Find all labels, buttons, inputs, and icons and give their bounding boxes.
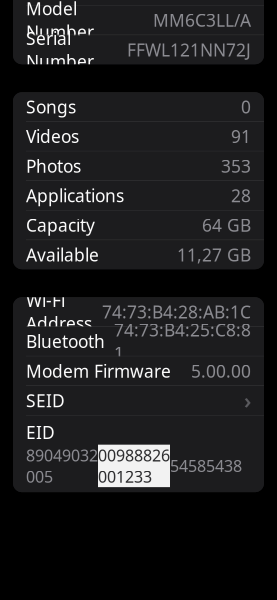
button[interactable]: EID — [13, 416, 264, 492]
button[interactable]: Videos — [13, 122, 264, 151]
staticText: Model Name — [26, 0, 131, 2]
button[interactable]: Available — [13, 240, 264, 269]
button[interactable]: Serial Number — [13, 35, 264, 64]
staticText: Model Number — [26, 0, 94, 43]
staticText: Capacity — [26, 214, 95, 237]
button[interactable]: Modem Firmware — [13, 356, 264, 385]
staticText: 5.00.00 — [191, 359, 251, 382]
button[interactable]: Capacity — [13, 211, 264, 240]
staticText: Modem Firmware — [26, 359, 171, 382]
button[interactable]: Photos — [13, 151, 264, 180]
staticText: 89049032005 — [26, 445, 98, 487]
button[interactable]: Bluetooth — [13, 327, 264, 356]
staticText: 74:73:B4:25:C8:81 — [114, 318, 251, 364]
staticText: FFWL121NN72J — [127, 38, 251, 61]
staticText: Bluetooth — [26, 330, 105, 353]
staticText: 74:73:B4:28:AB:1C — [102, 300, 251, 323]
button[interactable]: Applications — [13, 181, 264, 210]
button[interactable]: SEID — [13, 386, 264, 415]
button[interactable]: Model Name — [13, 0, 264, 5]
staticText: SEID — [26, 389, 65, 412]
staticText: Videos — [26, 125, 79, 148]
staticText: 353 — [221, 154, 251, 177]
staticText: › — [244, 386, 251, 415]
button[interactable]: Wi-Fi Address — [13, 297, 264, 326]
staticText: 0 — [241, 95, 251, 118]
staticText: 91 — [231, 125, 251, 148]
staticText: 28 — [231, 184, 251, 207]
staticText: Available — [26, 243, 99, 266]
staticText: Serial Number — [26, 27, 94, 73]
staticText: Songs — [26, 95, 76, 118]
staticText: 64 GB — [202, 214, 251, 237]
button[interactable]: Model Number — [13, 6, 264, 35]
staticText: 54585438 — [170, 455, 242, 476]
staticText: Wi-Fi Address — [26, 289, 92, 335]
staticText: MM6C3LL/A — [153, 9, 251, 32]
staticText: Applications — [26, 184, 124, 207]
button[interactable]: Songs — [13, 92, 264, 121]
staticText: Photos — [26, 154, 81, 177]
staticText: EID — [26, 421, 55, 444]
staticText: 00988826001233 — [98, 445, 170, 487]
staticText: 11,27 GB — [177, 243, 251, 266]
